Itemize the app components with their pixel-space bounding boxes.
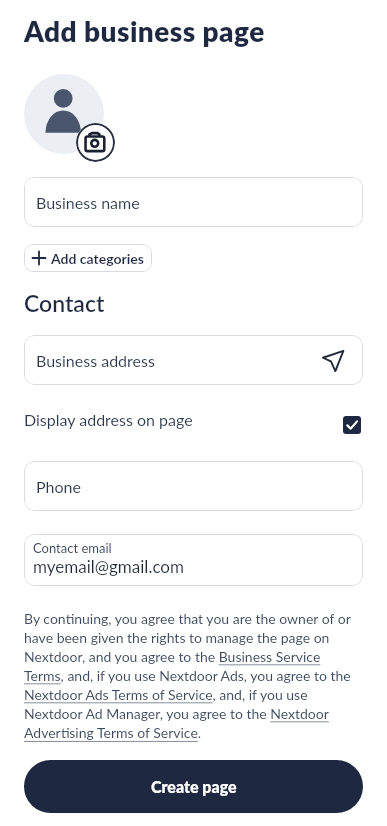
staticText: Contact email: [33, 540, 112, 556]
staticText: Phone: [36, 477, 81, 496]
button[interactable]: Business name: [24, 177, 363, 227]
staticText: Create page: [151, 777, 237, 796]
staticText: Contact: [24, 289, 105, 317]
staticText: Business address: [36, 351, 322, 370]
button[interactable]: Create page: [24, 760, 363, 813]
staticText: Add categories: [51, 250, 144, 267]
button[interactable]: Phone: [24, 461, 363, 511]
staticText: Display address on page: [24, 410, 343, 429]
button[interactable]: Display address on page: [24, 410, 363, 434]
button[interactable]: [343, 416, 361, 434]
button[interactable]: [24, 74, 104, 154]
button[interactable]: Contact email: [24, 534, 363, 586]
staticText: By continuing, you agree that you are th…: [24, 610, 351, 741]
button[interactable]: Add categories: [24, 244, 152, 272]
button[interactable]: [76, 123, 115, 162]
button[interactable]: Business address: [24, 335, 363, 385]
staticText: Business name: [36, 193, 140, 212]
staticText: myemail@gmail.com: [33, 556, 184, 576]
staticText: Add business page: [24, 14, 265, 48]
